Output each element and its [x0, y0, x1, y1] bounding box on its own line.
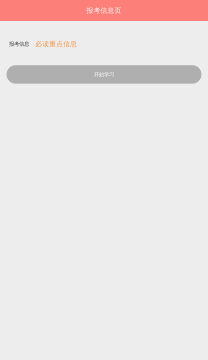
staticText: 报考信息页 — [86, 6, 121, 15]
staticText: 报考信息 — [9, 41, 29, 47]
staticText: 必读重点信息 — [35, 40, 77, 48]
staticText: 开始学习 — [94, 71, 114, 78]
button[interactable]: 开始学习 — [6, 65, 201, 84]
